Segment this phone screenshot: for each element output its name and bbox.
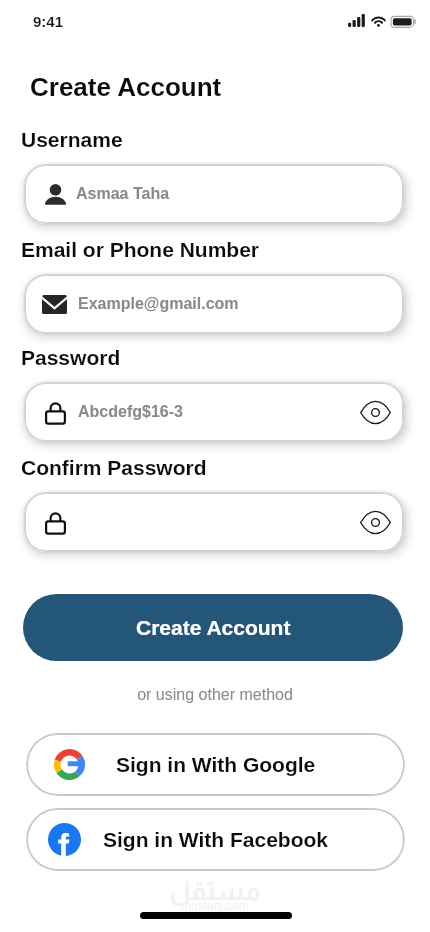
button[interactable]: Example@gmail.com — [24, 274, 404, 334]
staticText: Confirm Password — [21, 456, 207, 479]
button[interactable]: Create Account — [23, 594, 403, 661]
staticText: Create Account — [30, 72, 222, 101]
button[interactable]: Show password — [24, 492, 404, 552]
button[interactable]: Sign in With Google — [26, 733, 405, 796]
staticText: Sign in With Facebook — [103, 828, 328, 851]
staticText: Abcdefg$16-3 — [78, 403, 183, 421]
staticText: Password — [21, 346, 121, 369]
staticText: 9:41 — [33, 13, 64, 30]
staticText: or using other method — [0, 686, 430, 704]
staticText: Create Account — [136, 616, 291, 639]
staticText: Sign in With Google — [116, 753, 316, 776]
staticText: Email or Phone Number — [21, 238, 260, 261]
button[interactable]: Show password — [358, 395, 392, 429]
button[interactable]: Show password — [358, 505, 392, 539]
staticText: Username — [21, 128, 123, 151]
button[interactable]: Abcdefg$16-3 — [24, 382, 404, 442]
button[interactable]: Asmaa Taha — [24, 164, 404, 224]
staticText: Asmaa Taha — [76, 185, 170, 203]
button[interactable]: Sign in With Facebook — [26, 808, 405, 871]
staticText: Example@gmail.com — [78, 295, 239, 313]
